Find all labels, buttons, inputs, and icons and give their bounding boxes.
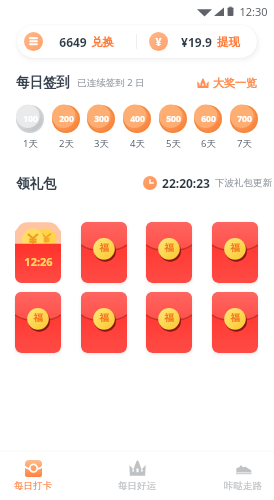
staticText: 每日好运 bbox=[118, 480, 156, 492]
button[interactable]: 每日打卡 bbox=[0, 452, 78, 500]
button[interactable]: 大奖一览 bbox=[197, 76, 257, 90]
staticText: 6649 bbox=[59, 34, 87, 50]
button[interactable]: 红包 bbox=[212, 292, 258, 353]
staticText: 22:20:23 bbox=[162, 175, 210, 191]
button[interactable]: 700 bbox=[230, 105, 258, 150]
button[interactable]: 6649 bbox=[17, 25, 136, 58]
staticText: 700 bbox=[237, 113, 252, 125]
staticText: 12:26 bbox=[24, 254, 53, 269]
staticText: 2天 bbox=[59, 137, 74, 150]
button[interactable]: 400 bbox=[123, 105, 151, 150]
staticText: 福 bbox=[33, 312, 43, 324]
staticText: 7天 bbox=[237, 137, 252, 150]
button[interactable]: 已开红包 12:26 bbox=[15, 222, 61, 283]
staticText: 领礼包 bbox=[16, 175, 57, 192]
staticText: 1天 bbox=[23, 137, 38, 150]
button[interactable]: 22:20:23 bbox=[137, 172, 274, 194]
staticText: 兑换 bbox=[91, 35, 114, 49]
staticText: 5天 bbox=[166, 137, 181, 150]
staticText: 每日打卡 bbox=[14, 480, 52, 492]
staticText: 6天 bbox=[201, 137, 216, 150]
staticText: 3天 bbox=[94, 137, 109, 150]
staticText: 300 bbox=[94, 113, 109, 125]
staticText: ¥19.9 bbox=[181, 34, 212, 50]
staticText: 咔哒走路 bbox=[224, 480, 262, 492]
button[interactable]: 红包 bbox=[212, 222, 258, 283]
staticText: 500 bbox=[166, 113, 181, 125]
button[interactable]: 红包 bbox=[146, 292, 192, 353]
staticText: 每日签到 bbox=[16, 74, 70, 91]
staticText: 4天 bbox=[130, 137, 145, 150]
button[interactable]: 200 bbox=[52, 105, 80, 150]
staticText: 12:30 bbox=[239, 4, 268, 19]
staticText: 大奖一览 bbox=[213, 76, 257, 90]
button[interactable]: 每日好运 bbox=[92, 452, 182, 500]
button[interactable]: 咔哒走路 bbox=[198, 452, 274, 500]
button[interactable]: 100 bbox=[16, 105, 44, 150]
staticText: 已连续签到 2 日 bbox=[77, 76, 145, 89]
button[interactable]: 红包 bbox=[81, 292, 127, 353]
button[interactable]: 500 bbox=[159, 105, 187, 150]
staticText: ¥ bbox=[155, 35, 162, 49]
staticText: 下波礼包更新 bbox=[215, 177, 272, 189]
staticText: 福 bbox=[230, 312, 240, 324]
staticText: 福 bbox=[164, 312, 174, 324]
button[interactable]: ¥ bbox=[137, 25, 257, 58]
button[interactable]: 红包 bbox=[146, 222, 192, 283]
staticText: 400 bbox=[130, 113, 145, 125]
staticText: 福 bbox=[99, 242, 109, 254]
staticText: 福 bbox=[164, 242, 174, 254]
staticText: 福 bbox=[230, 242, 240, 254]
staticText: 600 bbox=[201, 113, 216, 125]
staticText: 提现 bbox=[217, 35, 240, 49]
button[interactable]: 300 bbox=[87, 105, 115, 150]
staticText: 福 bbox=[99, 312, 109, 324]
staticText: 200 bbox=[59, 113, 74, 125]
button[interactable]: 600 bbox=[194, 105, 222, 150]
button[interactable]: 红包 bbox=[81, 222, 127, 283]
staticText: 100 bbox=[23, 113, 38, 125]
button[interactable]: 红包 bbox=[15, 292, 61, 353]
